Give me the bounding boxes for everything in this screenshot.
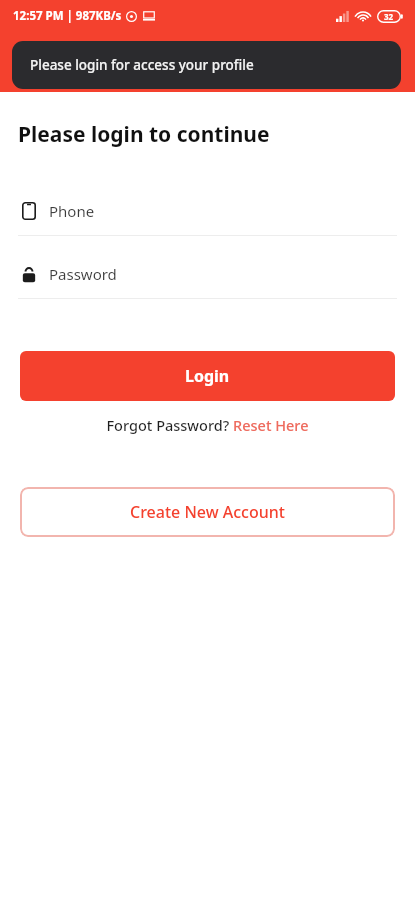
staticText: Forgot Password? Reset Here bbox=[106, 415, 309, 435]
staticText: Please login to continue bbox=[18, 120, 270, 149]
other: Password bbox=[22, 266, 36, 283]
staticText: 12:57 PM | 987KB/s bbox=[13, 8, 122, 24]
button[interactable]: Create New Account bbox=[20, 487, 395, 537]
staticText: Password bbox=[49, 264, 117, 284]
button[interactable]: Password bbox=[18, 262, 397, 286]
button[interactable]: Forgot Password? Reset Here bbox=[0, 415, 415, 435]
staticText: Please login for access your profile bbox=[30, 56, 254, 74]
staticText: 32 bbox=[384, 11, 394, 22]
staticText: Phone bbox=[49, 201, 95, 221]
button[interactable]: Please login for access your profile bbox=[12, 41, 401, 89]
staticText: Login bbox=[185, 365, 230, 387]
staticText: Create New Account bbox=[130, 501, 285, 523]
button[interactable]: Login bbox=[20, 351, 395, 401]
button[interactable]: Phone bbox=[18, 199, 397, 223]
other: Phone bbox=[22, 202, 36, 220]
